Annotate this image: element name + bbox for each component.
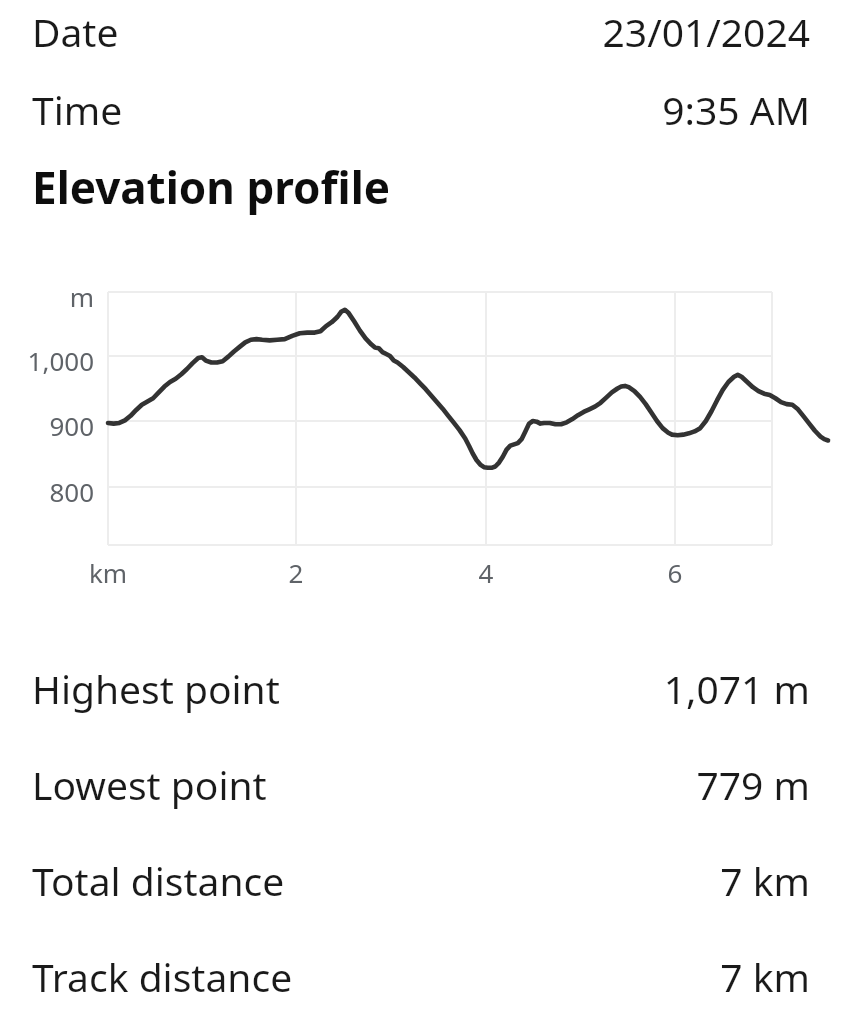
staticText: 9:35 AM	[662, 83, 810, 136]
staticText: Time	[32, 83, 123, 136]
staticText: 2	[246, 555, 346, 590]
button[interactable]: Track distance	[0, 928, 842, 1024]
staticText: Date	[32, 5, 119, 58]
staticText: 1,000	[0, 343, 94, 378]
staticText: Lowest point	[32, 758, 267, 811]
staticText: 23/01/2024	[602, 5, 810, 58]
staticText: Track distance	[32, 950, 293, 1003]
staticText: Total distance	[32, 854, 285, 907]
button[interactable]: Time	[0, 62, 842, 157]
staticText: 900	[0, 408, 94, 443]
button[interactable]: Lowest point	[0, 736, 842, 832]
button[interactable]: Date	[0, 0, 842, 62]
staticText: Highest point	[32, 662, 280, 715]
button[interactable]: Total distance	[0, 832, 842, 928]
staticText: 1,071 m	[663, 662, 810, 715]
staticText: Elevation profile	[32, 157, 391, 217]
staticText: 800	[0, 474, 94, 509]
staticText: km	[58, 555, 158, 590]
staticText: 7 km	[720, 854, 810, 907]
staticText: 6	[625, 555, 725, 590]
staticText: 779 m	[696, 758, 810, 811]
button[interactable]: Highest point	[0, 640, 842, 736]
staticText: 7 km	[720, 950, 810, 1003]
staticText: 4	[436, 555, 536, 590]
staticText: m	[0, 279, 94, 314]
